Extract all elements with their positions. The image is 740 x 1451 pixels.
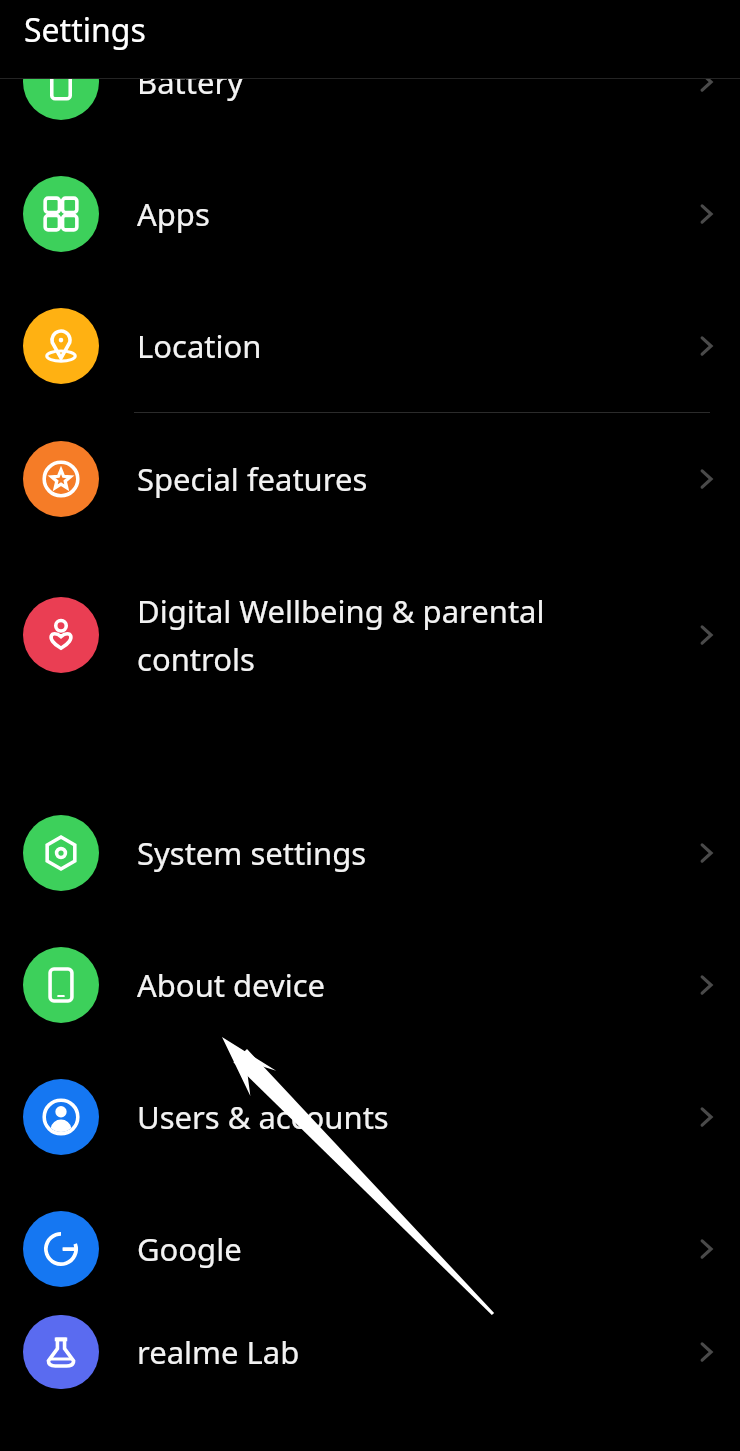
staticText: Google <box>137 1228 242 1270</box>
staticText: Battery <box>137 78 244 103</box>
staticText: About device <box>137 964 326 1006</box>
button[interactable]: Users & accounts <box>0 1051 740 1183</box>
button[interactable]: Google <box>0 1183 740 1315</box>
staticText: Apps <box>137 193 210 235</box>
staticText: Users & accounts <box>137 1096 389 1138</box>
button[interactable]: Special features <box>0 413 740 545</box>
staticText: realme Lab <box>137 1331 300 1373</box>
staticText: Settings <box>24 8 146 52</box>
staticText: Special features <box>137 458 368 500</box>
staticText: Location <box>137 325 262 367</box>
staticText: Digital Wellbeing & parental controls <box>137 590 545 680</box>
button[interactable]: Apps <box>0 148 740 280</box>
button[interactable]: Battery <box>0 78 740 148</box>
staticText: System settings <box>137 832 367 874</box>
button[interactable]: realme Lab <box>0 1315 740 1389</box>
button[interactable]: Location <box>0 280 740 412</box>
button[interactable]: System settings <box>0 787 740 919</box>
button[interactable]: Digital Wellbeing & parental controls <box>0 545 740 725</box>
button[interactable]: About device <box>0 919 740 1051</box>
